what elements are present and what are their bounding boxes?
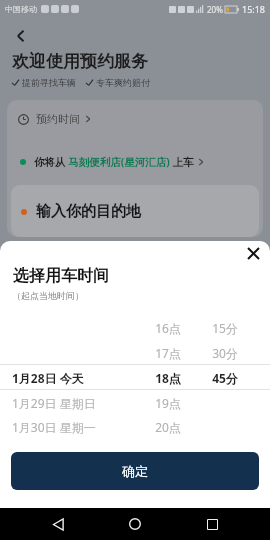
- staticText: 中国移动: [5, 4, 37, 14]
- staticText: 20%: [207, 4, 223, 15]
- button[interactable]: 1月30日 星期一: [0, 415, 270, 439]
- staticText: 预约时间: [36, 112, 80, 126]
- staticText: 专车爽约赔付: [96, 77, 150, 88]
- button[interactable]: 1月28日 今天: [0, 365, 270, 390]
- staticText: 你将从 马刻便利店(星河汇店) 上车: [34, 155, 194, 169]
- staticText: 确定: [122, 463, 148, 479]
- button[interactable]: 你将从 马刻便利店(星河汇店) 上车: [7, 153, 263, 171]
- button[interactable]: 16点: [0, 315, 270, 340]
- button[interactable]: Recents: [200, 512, 224, 536]
- staticText: 17点: [146, 345, 190, 361]
- staticText: 1月30日 星期一: [12, 419, 120, 435]
- staticText: 15分: [203, 320, 247, 336]
- staticText: 输入你的目的地: [36, 202, 141, 221]
- staticText: 45分: [203, 370, 247, 386]
- button[interactable]: Back: [8, 23, 34, 49]
- button[interactable]: 1月29日 星期日: [0, 390, 270, 415]
- button[interactable]: 17点: [0, 340, 270, 365]
- button[interactable]: Back: [46, 512, 70, 536]
- staticText: 20点: [146, 419, 190, 435]
- staticText: 选择用车时间: [13, 266, 109, 286]
- staticText: 18点: [146, 370, 190, 386]
- staticText: 欢迎使用预约服务: [12, 51, 148, 72]
- staticText: 提前寻找车辆: [22, 77, 76, 88]
- staticText: 19点: [146, 395, 190, 411]
- button[interactable]: Home: [123, 512, 147, 536]
- staticText: 15:18: [242, 3, 266, 15]
- staticText: （起点当地时间）: [12, 290, 84, 301]
- button[interactable]: Close: [242, 242, 264, 264]
- staticText: 16点: [146, 320, 190, 336]
- staticText: 30分: [203, 345, 247, 361]
- staticText: 1月28日 今天: [12, 370, 120, 386]
- button[interactable]: 确定: [11, 452, 259, 490]
- staticText: 1月29日 星期日: [12, 395, 120, 411]
- button[interactable]: 预约时间: [7, 110, 263, 128]
- button[interactable]: 输入你的目的地: [11, 185, 259, 237]
